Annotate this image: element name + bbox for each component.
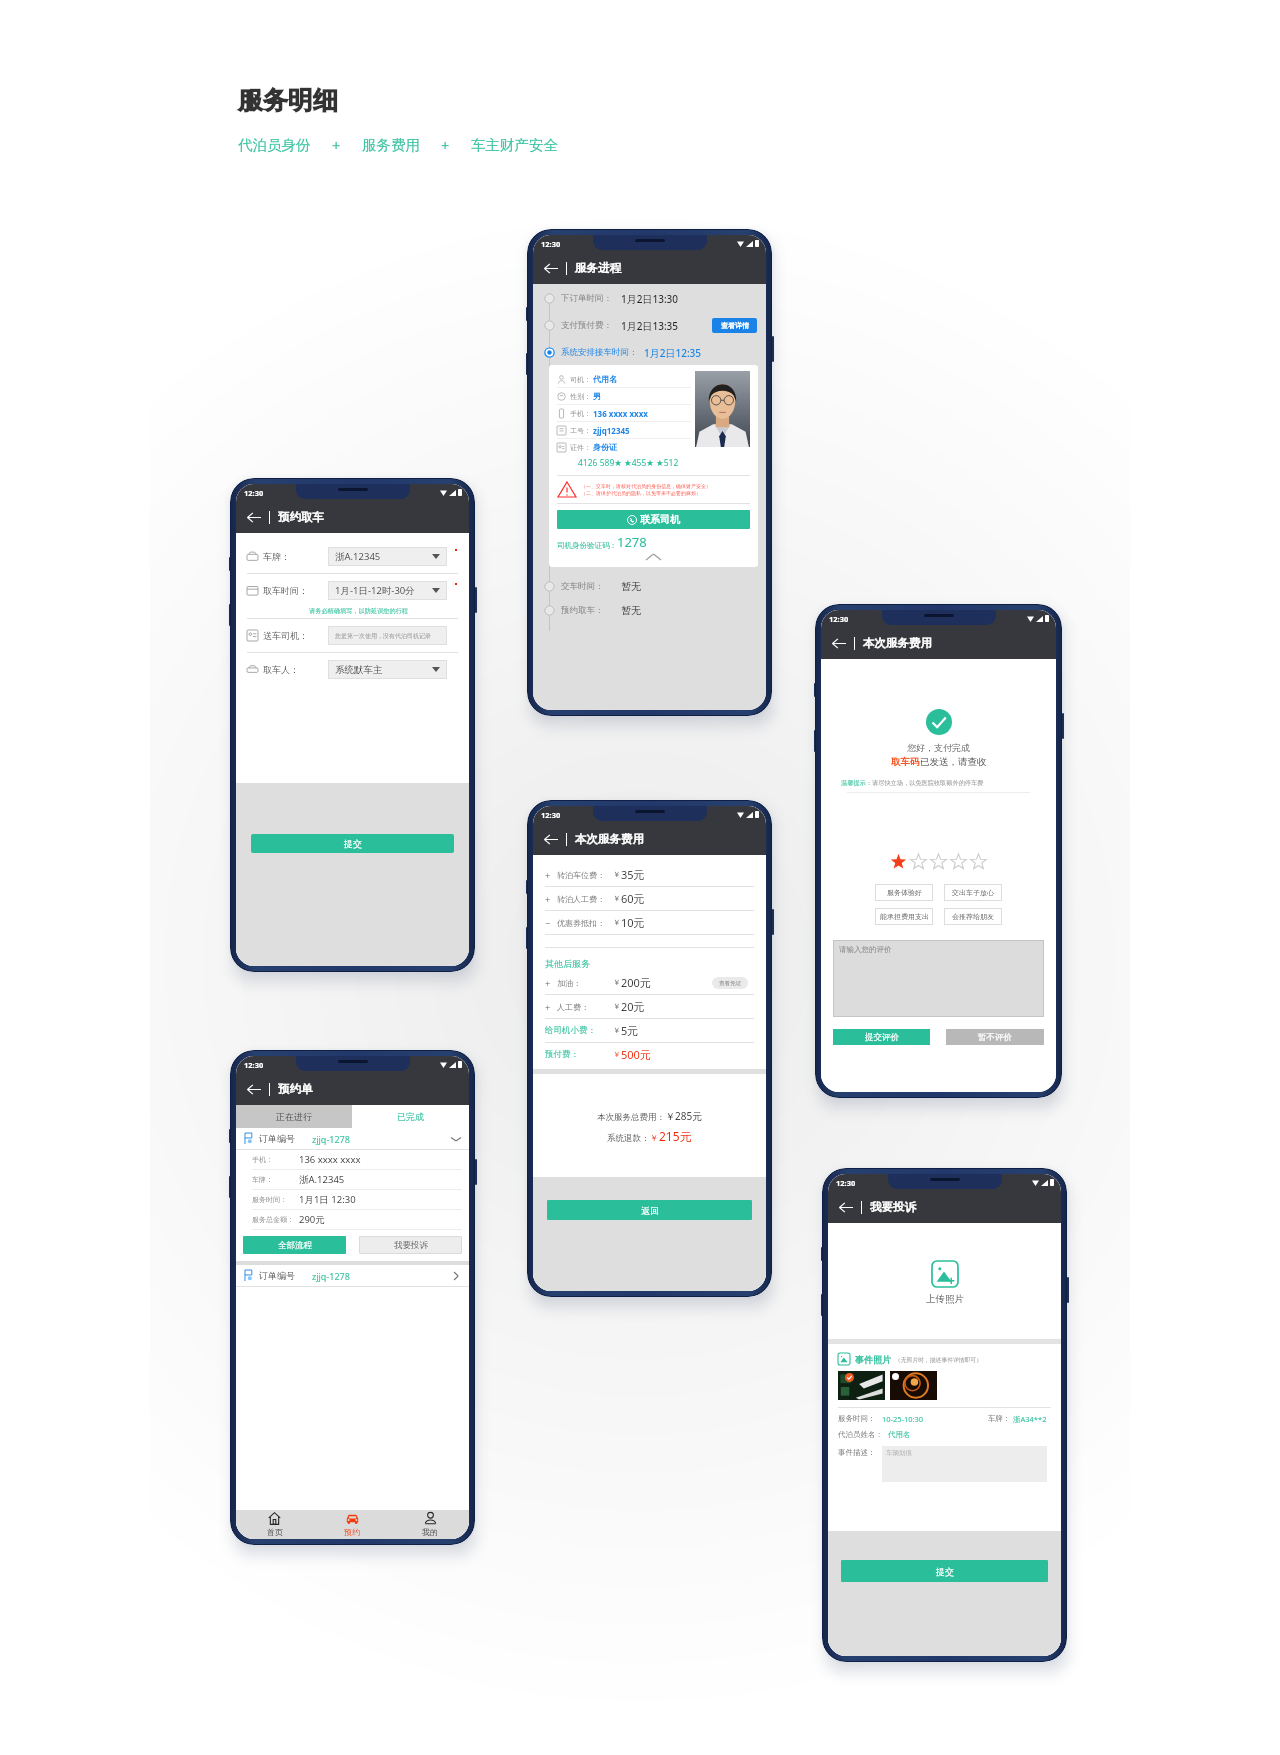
button[interactable]: 我的	[391, 1510, 469, 1539]
staticText: 取车码	[891, 756, 920, 768]
button[interactable]: Rate star	[950, 853, 967, 870]
staticText: 车牌：	[252, 1175, 299, 1184]
button[interactable]: Rate 1 star	[890, 853, 907, 870]
staticText: +	[545, 893, 557, 905]
button[interactable]: 订单编号	[243, 1128, 461, 1149]
staticText: 优惠券抵扣：	[557, 918, 613, 928]
button[interactable]: 联系司机	[557, 510, 750, 529]
button[interactable]: 浙A.12345	[328, 547, 447, 566]
button[interactable]: 返回	[547, 1200, 752, 1220]
button[interactable]: 1月-1日-12时-30分	[328, 581, 447, 600]
staticText: +	[545, 1001, 557, 1013]
staticText: 证件：	[570, 443, 591, 452]
staticText: 全部流程	[278, 1240, 312, 1251]
staticText: 浙A34**2	[1013, 1414, 1047, 1424]
staticText: 暂无	[621, 604, 641, 617]
button[interactable]: 全部流程	[243, 1236, 346, 1254]
staticText: zjjq-1278	[312, 1270, 350, 1282]
staticText: 浙A.12345	[299, 1173, 345, 1186]
staticText: 12:30	[836, 1178, 856, 1188]
staticText: 系统默车主	[335, 664, 383, 676]
staticText: ￥	[613, 1002, 621, 1011]
staticText: 男	[593, 391, 601, 401]
staticText: 取车时间：	[263, 585, 308, 596]
staticText: 工号：	[570, 426, 591, 435]
button[interactable]: 服务体验好	[875, 884, 933, 901]
button[interactable]: 提交评价	[833, 1029, 930, 1045]
staticText: 服务体验好	[887, 888, 922, 897]
staticText: 1月1日 12:30	[299, 1193, 356, 1206]
staticText: 本次服务费用	[863, 636, 932, 650]
button[interactable]: 首页	[236, 1510, 313, 1539]
staticText: 暂无	[621, 580, 641, 593]
button[interactable]: Back	[245, 1080, 263, 1098]
button[interactable]: 提交	[251, 834, 454, 853]
staticText: 下订单时间：	[561, 293, 621, 304]
button[interactable]: 查看详情	[712, 318, 757, 333]
staticText: 手机：	[570, 409, 591, 418]
staticText: 提交评价	[865, 1032, 899, 1043]
staticText: 1月2日13:35	[621, 319, 679, 333]
staticText: 订单编号	[259, 1133, 295, 1144]
staticText: 1278	[617, 533, 647, 551]
button[interactable]: Back	[837, 1198, 855, 1216]
button[interactable]: 您是第一次使用，没有代泊司机记录	[328, 626, 447, 645]
staticText: 服务时间：	[252, 1195, 299, 1204]
button[interactable]: 会推荐给朋友	[944, 908, 1002, 925]
staticText: 12:30	[244, 1060, 264, 1070]
button[interactable]: 交出车子放心	[944, 884, 1002, 901]
button[interactable]: Photo 2	[890, 1371, 937, 1400]
staticText: 提交	[344, 838, 362, 849]
staticText: 查看凭证	[719, 980, 741, 987]
button[interactable]: Back	[542, 830, 560, 848]
staticText: 您是第一次使用，没有代泊司机记录	[335, 632, 431, 640]
button[interactable]: Upload photo	[932, 1261, 958, 1287]
button[interactable]: 正在进行	[236, 1105, 352, 1128]
button[interactable]: 我要投诉	[359, 1236, 462, 1254]
staticText: −	[545, 917, 557, 929]
staticText: zjjq-1278	[312, 1133, 350, 1145]
staticText: 身份证	[593, 442, 617, 452]
button[interactable]: 系统默车主	[328, 660, 447, 679]
staticText: 已发送，请查收	[920, 756, 987, 768]
staticText: 预付费：	[545, 1049, 613, 1060]
button[interactable]: 预约	[313, 1510, 391, 1539]
staticText: 290元	[299, 1213, 325, 1226]
staticText: 我要投诉	[870, 1200, 916, 1214]
button[interactable]: 已完成	[352, 1105, 469, 1128]
staticText: ￥285元	[665, 1109, 703, 1123]
staticText: 1月2日12:35	[644, 346, 702, 360]
button[interactable]: 订单编号	[243, 1265, 461, 1286]
staticText: 支付预付费：	[561, 320, 621, 331]
staticText: ￥	[650, 1133, 659, 1144]
staticText: 手机：	[252, 1155, 299, 1164]
staticText: 车辆划痕	[886, 1449, 912, 1457]
staticText: 给司机小费：	[545, 1025, 613, 1036]
staticText: 代用名	[593, 374, 617, 384]
button[interactable]: Rate star	[910, 853, 927, 870]
staticText: +	[545, 869, 557, 881]
staticText: 服务总金额：	[252, 1215, 299, 1224]
staticText: 请尽快立场，以免医院收取额外的停车费	[872, 779, 984, 787]
staticText: 请输入您的评价	[839, 945, 892, 954]
staticText: 200元	[621, 975, 651, 990]
staticText: 首页	[267, 1527, 283, 1537]
staticText: 12:30	[541, 239, 561, 249]
staticText: 加油：	[557, 978, 613, 988]
button[interactable]: 暂不评价	[946, 1029, 1044, 1045]
button[interactable]: 查看凭证	[712, 977, 748, 989]
button[interactable]: Back	[245, 508, 263, 526]
button[interactable]: Photo 1	[838, 1371, 885, 1400]
button[interactable]: Collapse	[557, 553, 750, 561]
button[interactable]: Rate star	[930, 853, 947, 870]
staticText: 转泊车位费：	[557, 870, 613, 880]
button[interactable]: 提交	[841, 1560, 1048, 1582]
staticText: 预约单	[278, 1082, 313, 1096]
staticText: ￥	[613, 1026, 621, 1035]
staticText: 性别：	[570, 392, 591, 401]
staticText: 本次服务费用	[575, 832, 644, 846]
button[interactable]: Back	[542, 259, 560, 277]
button[interactable]: Back	[830, 634, 848, 652]
button[interactable]: 能承担费用支出	[875, 908, 933, 925]
button[interactable]: Rate star	[970, 853, 987, 870]
